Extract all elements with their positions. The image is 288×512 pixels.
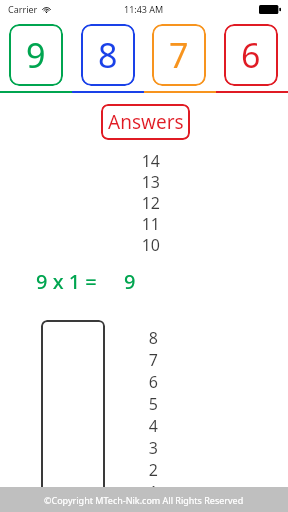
staticText: Answers bbox=[108, 109, 184, 135]
staticText: Carrier bbox=[8, 3, 38, 15]
button[interactable]: 9 bbox=[9, 24, 63, 86]
staticText: 9 x 1 = bbox=[36, 268, 97, 295]
button[interactable]: 7 bbox=[152, 24, 206, 86]
staticText: 13 bbox=[141, 171, 160, 192]
staticText: 8 bbox=[98, 32, 118, 78]
staticText: 1 bbox=[148, 481, 158, 503]
staticText: 8 bbox=[148, 327, 158, 349]
staticText: 11 bbox=[141, 213, 160, 234]
staticText: 3 bbox=[148, 437, 158, 459]
staticText: 7 bbox=[169, 32, 189, 78]
staticText: 12 bbox=[141, 192, 160, 213]
staticText: 11:43 AM bbox=[124, 3, 164, 15]
button[interactable]: 6 bbox=[224, 24, 278, 86]
staticText: 9 bbox=[124, 268, 136, 295]
button[interactable]: Answers bbox=[101, 104, 190, 140]
staticText: 5 bbox=[148, 393, 158, 415]
staticText: 9 bbox=[26, 32, 46, 78]
button[interactable] bbox=[41, 320, 105, 498]
button[interactable]: 8 bbox=[81, 24, 135, 86]
staticText: ©Copyright MTech-Nik.com All Rights Rese… bbox=[44, 494, 244, 506]
staticText: 7 bbox=[148, 349, 158, 371]
staticText: 10 bbox=[141, 234, 160, 255]
staticText: 2 bbox=[148, 459, 158, 481]
staticText: 4 bbox=[148, 415, 158, 437]
staticText: 6 bbox=[148, 371, 158, 393]
staticText: 14 bbox=[141, 150, 160, 171]
staticText: 6 bbox=[241, 32, 261, 78]
